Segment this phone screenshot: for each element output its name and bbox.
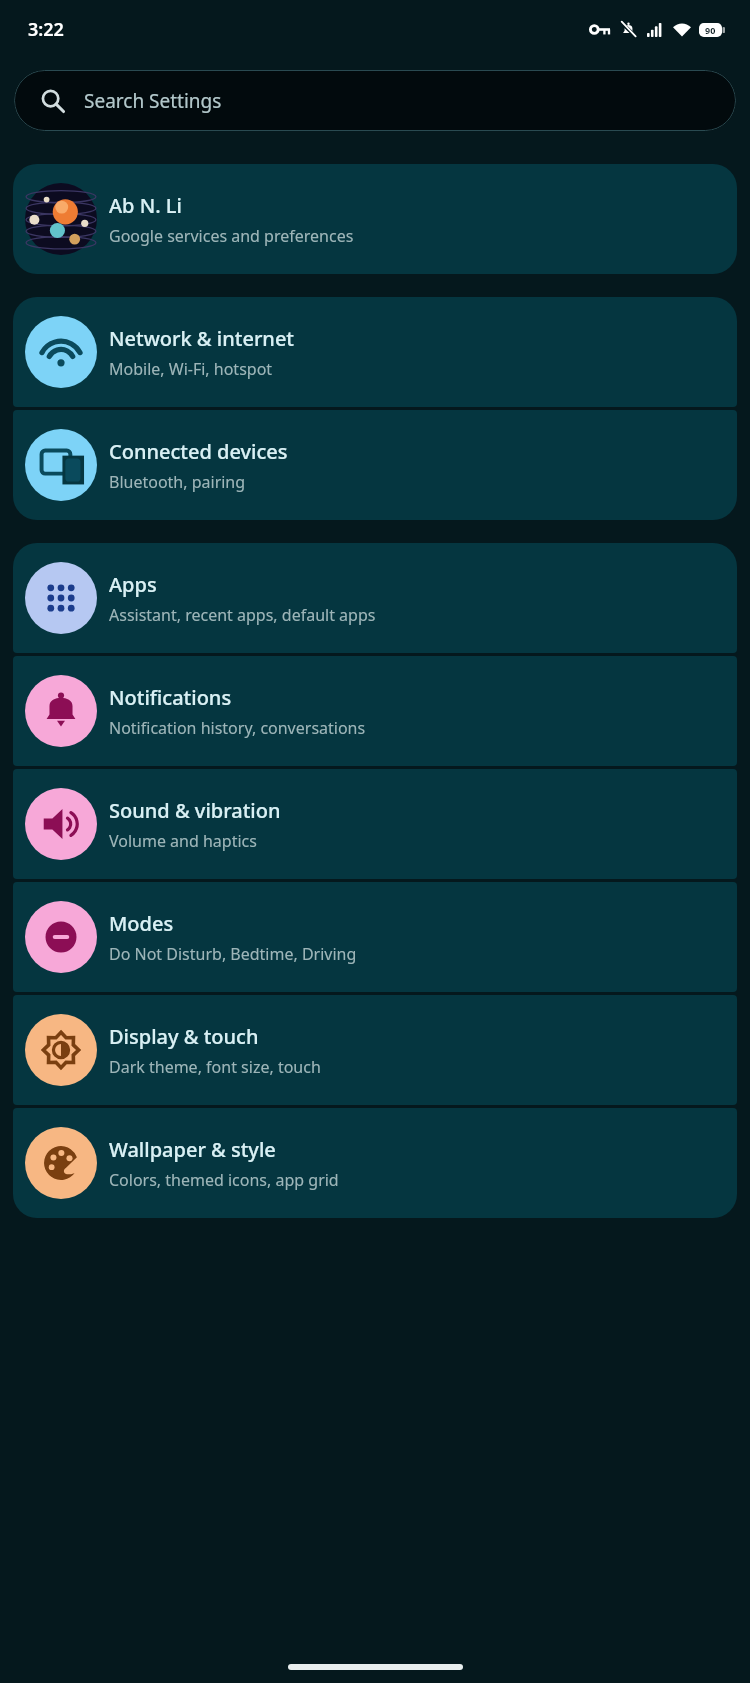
button[interactable]: Network & internet (13, 297, 737, 407)
staticText: Apps (109, 571, 157, 598)
staticText: 90 (705, 24, 716, 36)
staticText: Mobile, Wi-Fi, hotspot (109, 358, 273, 380)
staticText: Modes (109, 910, 174, 937)
staticText: Dark theme, font size, touch (109, 1056, 321, 1078)
staticText: Do Not Disturb, Bedtime, Driving (109, 943, 357, 965)
staticText: Wallpaper & style (109, 1136, 276, 1163)
staticText: Connected devices (109, 438, 288, 465)
staticText: Network & internet (109, 325, 295, 352)
button[interactable]: Notifications (13, 656, 737, 766)
staticText: Volume and haptics (109, 830, 257, 852)
button[interactable]: Display & touch (13, 995, 737, 1105)
staticText: Ab N. Li (109, 192, 182, 219)
button[interactable]: Connected devices (13, 410, 737, 520)
staticText: Assistant, recent apps, default apps (109, 604, 376, 626)
button[interactable]: Ab N. Li (13, 164, 737, 274)
button[interactable]: Search Settings (14, 70, 736, 131)
staticText: Colors, themed icons, app grid (109, 1169, 339, 1191)
staticText: Notification history, conversations (109, 717, 366, 739)
button[interactable]: Modes (13, 882, 737, 992)
button[interactable]: Apps (13, 543, 737, 653)
staticText: Sound & vibration (109, 797, 281, 824)
button[interactable]: Wallpaper & style (13, 1108, 737, 1218)
staticText: Bluetooth, pairing (109, 471, 246, 493)
staticText: Search Settings (84, 88, 222, 114)
button[interactable]: Sound & vibration (13, 769, 737, 879)
staticText: Notifications (109, 684, 232, 711)
staticText: 3:22 (28, 17, 64, 42)
staticText: Google services and preferences (109, 225, 354, 247)
staticText: Display & touch (109, 1023, 259, 1050)
